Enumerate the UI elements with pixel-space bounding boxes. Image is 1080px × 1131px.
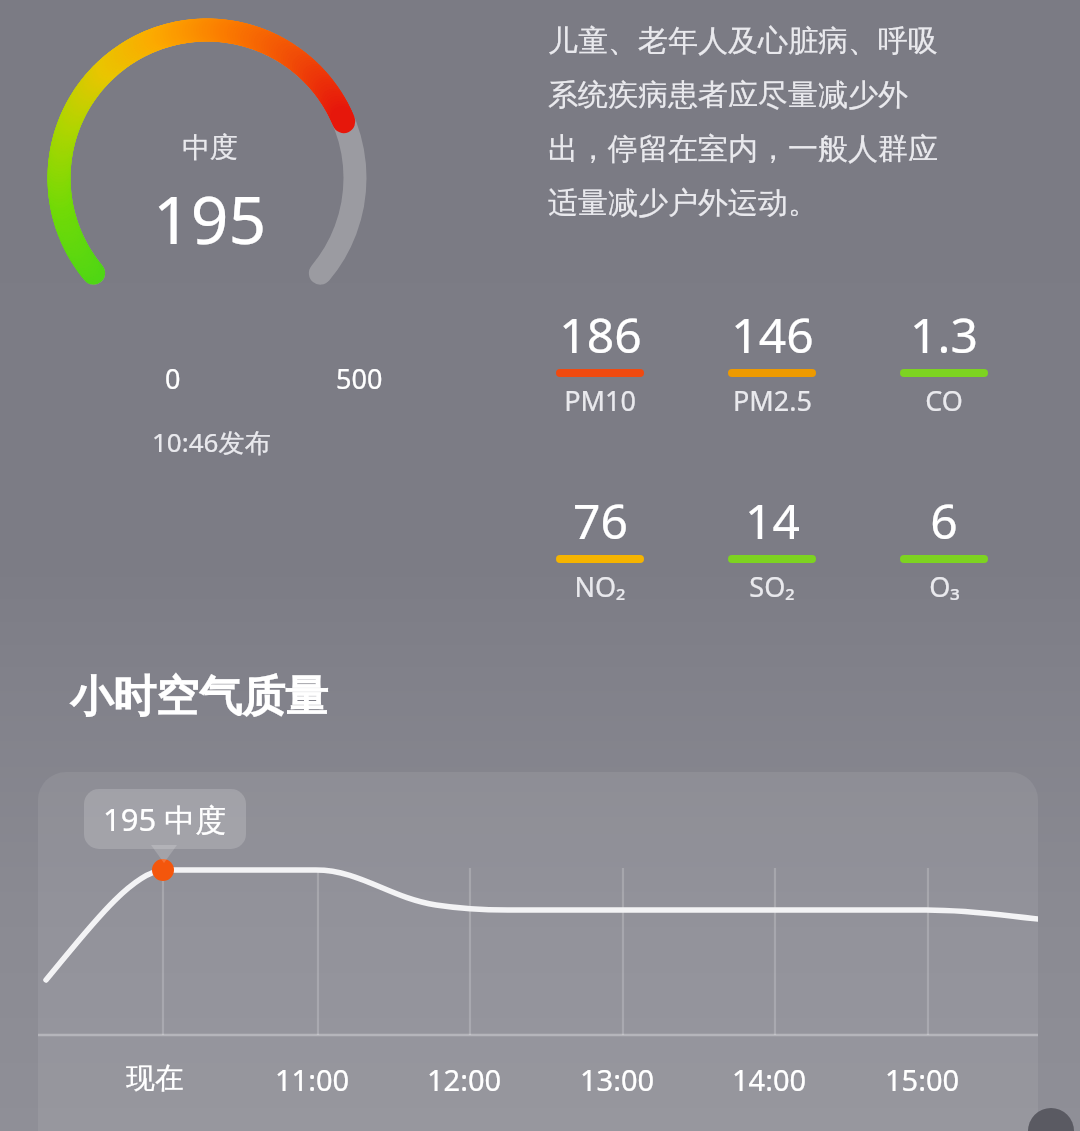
staticText: 195 中度 — [103, 798, 227, 840]
button[interactable]: 195 中度 — [38, 772, 1038, 1131]
staticText: 出，停留在室内，一般人群应 — [548, 130, 938, 168]
button[interactable]: 1.3 — [882, 302, 1006, 419]
button[interactable]: 186 — [538, 302, 662, 419]
staticText: 13:00 — [580, 1060, 655, 1099]
staticText: 系统疾病患者应尽量减少外 — [548, 76, 908, 114]
staticText: 1.3 — [910, 302, 978, 367]
staticText: CO — [925, 382, 963, 419]
staticText: 10:46发布 — [152, 424, 271, 460]
staticText: 小时空气质量 — [70, 670, 328, 724]
staticText: SO₂ — [749, 568, 795, 605]
staticText: 14:00 — [732, 1060, 807, 1099]
button[interactable]: 6 — [882, 488, 1006, 605]
staticText: 12:00 — [427, 1060, 502, 1099]
staticText: 500 — [336, 360, 383, 397]
button[interactable]: 中度 — [40, 8, 380, 408]
staticText: O₃ — [929, 568, 960, 605]
staticText: 14 — [745, 488, 800, 553]
staticText: 适量减少户外运动。 — [548, 184, 818, 222]
button[interactable]: 76 — [538, 488, 662, 605]
staticText: 15:00 — [885, 1060, 960, 1099]
staticText: 11:00 — [275, 1060, 350, 1099]
staticText: 现在 — [126, 1060, 184, 1097]
staticText: 儿童、老年人及心脏病、呼吸 — [548, 22, 938, 60]
staticText: PM2.5 — [733, 382, 812, 419]
staticText: 中度 — [182, 130, 238, 165]
staticText: PM10 — [564, 382, 636, 419]
staticText: NO₂ — [574, 568, 626, 605]
staticText: 146 — [731, 302, 814, 367]
staticText: 195 — [153, 173, 267, 263]
staticText: 186 — [559, 302, 642, 367]
button[interactable]: 14 — [710, 488, 834, 605]
button[interactable]: More options — [1028, 1108, 1074, 1131]
staticText: 76 — [573, 488, 628, 553]
button[interactable]: 146 — [710, 302, 834, 419]
staticText: 0 — [165, 360, 181, 397]
staticText: 6 — [930, 488, 958, 553]
